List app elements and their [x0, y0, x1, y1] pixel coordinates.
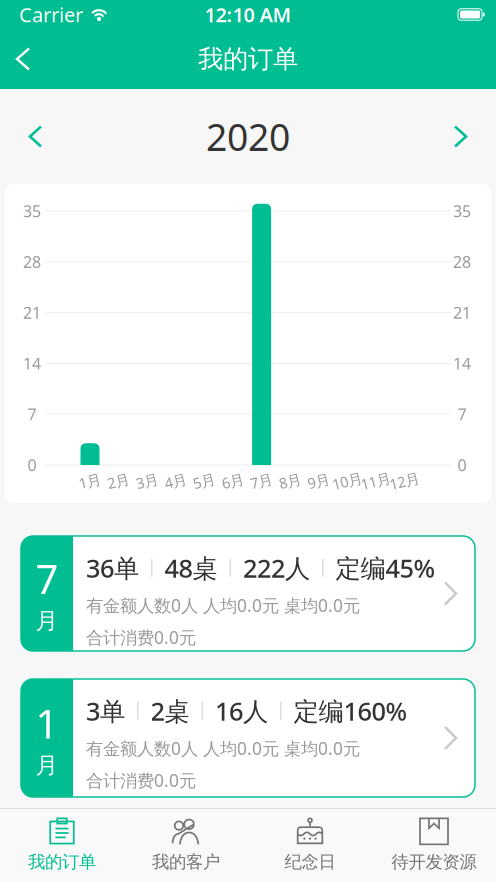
staticText: 0 [457, 454, 466, 476]
staticText: 合计消费0.0元 [86, 626, 196, 649]
staticText: 7 [457, 404, 466, 425]
staticText: 有金额人数0人 人均0.0元 桌均0.0元 [86, 737, 360, 760]
staticText: Carrier [19, 1, 83, 28]
staticText: 合计消费0.0元 [86, 769, 196, 792]
staticText: 6月 [221, 471, 244, 491]
staticText: 我的客户 [152, 851, 220, 873]
staticText: 7 [27, 404, 36, 425]
button[interactable]: Next year [431, 106, 496, 166]
staticText: 7 [35, 552, 58, 605]
staticText: 10月 [332, 471, 363, 491]
staticText: 12月 [389, 471, 420, 491]
staticText: 0 [27, 454, 36, 476]
staticText: 14 [453, 353, 471, 374]
staticText: 纪念日 [284, 851, 335, 873]
staticText: 月 [35, 607, 58, 635]
staticText: 2月 [107, 471, 130, 491]
button[interactable]: 待开发资源 [372, 812, 496, 878]
staticText: 48桌 [164, 551, 217, 585]
staticText: 有金额人数0人 人均0.0元 桌均0.0元 [86, 594, 360, 617]
staticText: 月 [35, 752, 58, 779]
staticText: 36单 [86, 551, 139, 585]
button[interactable]: 纪念日 [248, 812, 372, 878]
staticText: 定编45% [335, 551, 435, 585]
staticText: 28 [23, 251, 41, 272]
staticText: 1 [35, 696, 58, 750]
staticText: 我的订单 [28, 851, 96, 873]
staticText: 21 [23, 302, 41, 323]
staticText: 8月 [279, 471, 302, 491]
staticText: 16人 [215, 694, 268, 728]
button[interactable]: 我的订单 [0, 812, 124, 878]
button[interactable]: 我的客户 [124, 812, 248, 878]
staticText: 1月 [78, 471, 101, 491]
staticText: 28 [453, 251, 471, 272]
button[interactable]: 1 [21, 679, 475, 797]
staticText: 21 [453, 302, 471, 323]
staticText: 12:10 AM [204, 1, 291, 28]
staticText: 35 [453, 200, 471, 222]
button[interactable]: 7 [21, 536, 475, 651]
staticText: 我的订单 [198, 43, 298, 74]
staticText: 2020 [206, 112, 290, 161]
staticText: 35 [23, 200, 41, 222]
staticText: 4月 [164, 471, 187, 491]
staticText: 222人 [243, 551, 310, 585]
staticText: 2桌 [150, 694, 189, 728]
staticText: 3单 [86, 694, 125, 728]
staticText: 7月 [250, 471, 273, 491]
button[interactable]: Previous year [0, 106, 65, 166]
staticText: 14 [23, 353, 41, 374]
staticText: 11月 [360, 471, 391, 491]
staticText: 待开发资源 [391, 851, 476, 873]
staticText: 定编160% [293, 694, 407, 728]
staticText: 9月 [307, 471, 330, 491]
staticText: 3月 [136, 471, 159, 491]
staticText: 5月 [193, 471, 216, 491]
button[interactable]: Back [0, 34, 49, 83]
